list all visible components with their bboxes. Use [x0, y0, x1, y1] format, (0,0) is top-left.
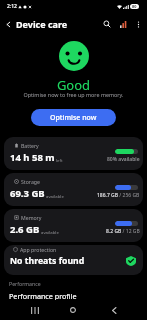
staticText: 69.3 GB [10, 187, 45, 200]
button[interactable]: Usage chart [115, 16, 131, 32]
staticText: Battery [21, 142, 39, 149]
button[interactable]: Recents [24, 300, 46, 320]
staticText: Optimise now [50, 113, 97, 123]
staticText: Optimise now to free up more memory. [0, 91, 147, 98]
staticText: Good [0, 76, 147, 94]
button[interactable]: More options [131, 17, 145, 31]
staticText: Memory [21, 214, 42, 221]
button[interactable]: Back [103, 300, 125, 320]
button[interactable]: Storage [4, 173, 143, 206]
staticText: 2:12 [7, 3, 17, 10]
button[interactable]: Back [2, 18, 15, 31]
staticText: App protection [20, 246, 57, 253]
button[interactable]: Battery [4, 137, 143, 170]
staticText: Performance profile [9, 291, 77, 301]
button[interactable]: Home [62, 300, 84, 320]
staticText: 186.7 GB / 256 GB [97, 192, 140, 199]
staticText: Device care [16, 18, 68, 30]
staticText: Performance [9, 280, 41, 287]
button[interactable]: App protection [4, 245, 143, 275]
staticText: 80% available [107, 156, 140, 163]
staticText: available [41, 229, 59, 235]
button[interactable]: Memory [4, 209, 143, 242]
staticText: 2.6 GB [10, 223, 40, 236]
button[interactable]: Optimise now [31, 109, 116, 126]
button[interactable]: Search [99, 16, 115, 32]
staticText: 8.2 GB / 12 GB [106, 228, 140, 235]
staticText: No threats found [10, 255, 85, 267]
staticText: left [56, 157, 63, 163]
staticText: 14 h 58 m [10, 151, 55, 164]
staticText: available [46, 193, 64, 199]
staticText: Storage [21, 178, 40, 185]
staticText: 80 [132, 4, 137, 9]
